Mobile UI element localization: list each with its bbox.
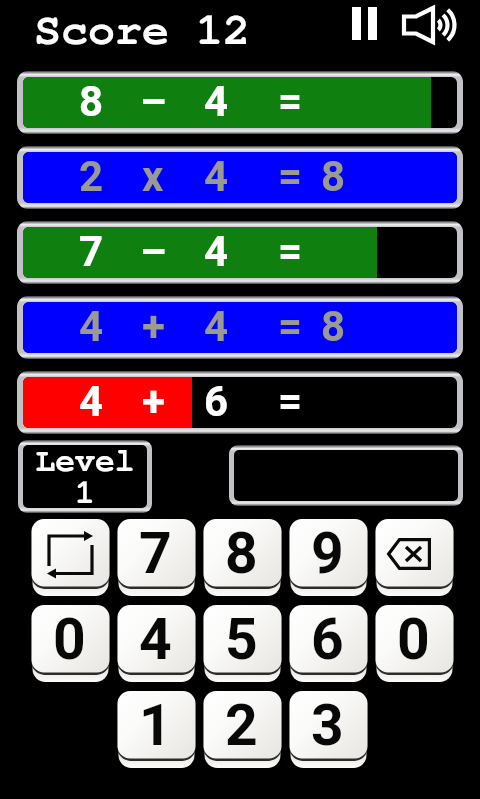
- button[interactable]: 4: [117, 605, 196, 682]
- staticText: +: [142, 377, 165, 426]
- staticText: =: [278, 227, 303, 276]
- staticText: 4: [79, 302, 104, 351]
- staticText: 0: [397, 606, 430, 673]
- staticText: 8: [225, 520, 258, 587]
- staticText: –: [140, 77, 167, 126]
- button[interactable]: Level 1: [18, 440, 152, 513]
- staticText: Level 1: [35, 445, 135, 508]
- staticText: 8: [321, 302, 346, 351]
- button[interactable]: Restart: [31, 519, 110, 596]
- staticText: 0: [53, 606, 86, 673]
- button[interactable]: 7: [23, 227, 457, 278]
- button[interactable]: 8: [203, 519, 282, 596]
- staticText: =: [278, 302, 303, 351]
- staticText: 2: [225, 692, 258, 759]
- button[interactable]: 2: [23, 152, 457, 203]
- staticText: 8: [79, 77, 104, 126]
- staticText: 3: [311, 692, 344, 759]
- staticText: 8: [321, 152, 346, 201]
- button[interactable]: Backspace: [375, 519, 454, 596]
- button[interactable]: 0: [375, 605, 454, 682]
- staticText: 7: [139, 520, 172, 587]
- staticText: 4: [204, 77, 229, 126]
- button[interactable]: 3: [289, 691, 368, 768]
- staticText: 4: [139, 606, 172, 673]
- button[interactable]: 0: [31, 605, 110, 682]
- button[interactable]: 4: [23, 377, 457, 428]
- button[interactable]: Pause: [348, 3, 382, 45]
- staticText: 1: [139, 692, 172, 759]
- button[interactable]: 1: [117, 691, 196, 768]
- button[interactable]: 5: [203, 605, 282, 682]
- staticText: 4: [204, 152, 229, 201]
- button[interactable]: Sound on: [398, 2, 462, 48]
- staticText: 6: [311, 606, 344, 673]
- button[interactable]: 4: [23, 302, 457, 353]
- staticText: =: [278, 77, 303, 126]
- staticText: 6: [204, 377, 229, 426]
- staticText: 7: [79, 227, 104, 276]
- staticText: Score 12: [34, 8, 251, 53]
- button[interactable]: 2: [203, 691, 282, 768]
- button[interactable]: 7: [117, 519, 196, 596]
- staticText: 4: [204, 227, 229, 276]
- button[interactable]: 9: [289, 519, 368, 596]
- button[interactable]: 8: [23, 77, 457, 128]
- staticText: =: [278, 152, 303, 201]
- staticText: +: [142, 302, 165, 351]
- staticText: 9: [311, 520, 344, 587]
- staticText: 5: [225, 606, 258, 673]
- button[interactable]: 6: [289, 605, 368, 682]
- staticText: 4: [79, 377, 104, 426]
- staticText: –: [140, 227, 167, 276]
- staticText: x: [142, 152, 164, 201]
- staticText: 4: [204, 302, 229, 351]
- staticText: =: [278, 377, 303, 426]
- staticText: 2: [79, 152, 104, 201]
